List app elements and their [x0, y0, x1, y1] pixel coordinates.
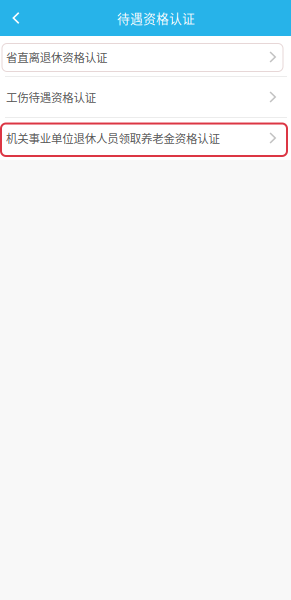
button[interactable]: Back [0, 0, 32, 36]
staticText: 机关事业单位退休人员领取养老金资格认证 [6, 130, 219, 146]
staticText: 省直离退休资格认证 [6, 49, 107, 65]
button[interactable]: 机关事业单位退休人员领取养老金资格认证 [0, 118, 291, 158]
button[interactable]: 省直离退休资格认证 [0, 36, 291, 76]
staticText: 工伤待遇资格认证 [6, 89, 95, 105]
button[interactable]: 工伤待遇资格认证 [0, 77, 291, 117]
staticText: 待遇资格认证 [117, 9, 195, 27]
